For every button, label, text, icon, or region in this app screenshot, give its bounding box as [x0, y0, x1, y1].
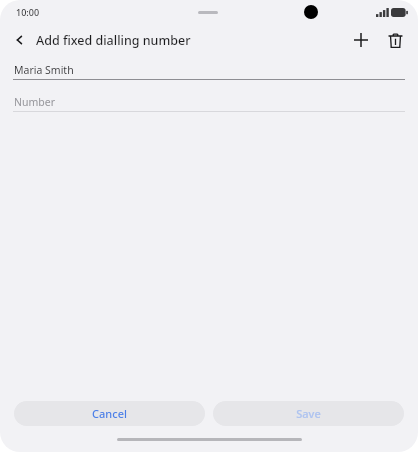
- staticText: Number: [14, 95, 56, 109]
- button[interactable]: Delete: [380, 25, 410, 55]
- button[interactable]: Cancel: [14, 401, 205, 426]
- staticText: 10:00: [16, 6, 40, 18]
- button[interactable]: Maria Smith: [0, 60, 418, 80]
- staticText: Add fixed dialling number: [36, 32, 191, 49]
- staticText: Maria Smith: [14, 63, 74, 77]
- button[interactable]: Number: [0, 92, 418, 112]
- staticText: Save: [296, 406, 321, 421]
- button[interactable]: Save: [213, 401, 404, 426]
- other: Back: [10, 30, 30, 50]
- button[interactable]: Add: [346, 25, 376, 55]
- button[interactable]: Back: [10, 30, 191, 50]
- staticText: Cancel: [92, 406, 127, 421]
